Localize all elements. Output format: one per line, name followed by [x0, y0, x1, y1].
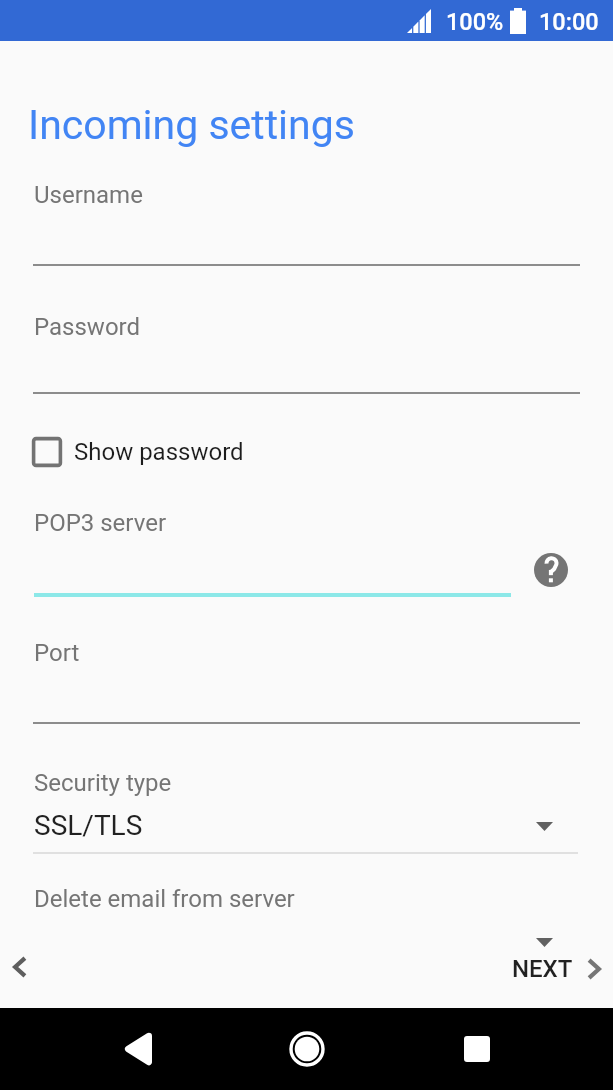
button[interactable]: [33, 764, 578, 854]
button[interactable]: Help: [534, 553, 568, 587]
button[interactable]: Recent apps: [445, 1017, 509, 1081]
staticText: Incoming settings: [28, 101, 355, 149]
staticText: Password: [34, 313, 141, 341]
staticText: Security type: [34, 769, 172, 797]
button[interactable]: [33, 634, 580, 724]
button[interactable]: Home: [275, 1017, 339, 1081]
staticText: 100%: [446, 8, 504, 36]
staticText: Port: [34, 639, 80, 667]
staticText: Delete email from server: [34, 885, 295, 913]
button[interactable]: [33, 306, 580, 394]
staticText: Username: [34, 181, 143, 209]
staticText: NEXT: [512, 955, 573, 983]
staticText: 10:00: [539, 8, 599, 36]
button[interactable]: Back: [105, 1017, 169, 1081]
button[interactable]: NEXT: [512, 945, 601, 993]
button[interactable]: Previous: [0, 943, 48, 991]
button[interactable]: Show password: [31, 431, 244, 473]
staticText: SSL/TLS: [34, 809, 143, 842]
staticText: Show password: [74, 438, 244, 466]
staticText: POP3 server: [34, 509, 167, 537]
button[interactable]: [33, 176, 580, 266]
button[interactable]: [33, 880, 578, 950]
button[interactable]: [33, 504, 511, 597]
